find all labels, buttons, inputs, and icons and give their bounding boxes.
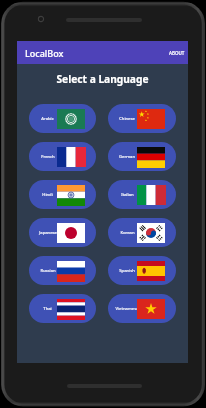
button[interactable]: Spanish [108,256,176,285]
button[interactable]: Japanese [29,218,96,247]
staticText: LocalBox [25,47,64,59]
staticText: Select a Language [17,72,188,86]
staticText: Italian [121,192,134,198]
button[interactable]: Chinese [108,104,176,133]
button[interactable]: Thai [29,294,96,323]
staticText: French [41,154,55,160]
staticText: Arabic [41,116,54,122]
button[interactable]: French [29,142,96,171]
staticText: Russian [40,268,56,274]
staticText: Chinese [119,116,135,122]
staticText: Korean [120,230,135,236]
staticText: Vietnamese [115,306,139,312]
button[interactable]: Korean [108,218,176,247]
button[interactable]: Italian [108,180,176,209]
staticText: Japanese [39,230,57,236]
button[interactable]: Arabic [29,104,96,133]
button[interactable]: Hindi [29,180,96,209]
staticText: Hindi [42,192,53,198]
button[interactable]: ABOUT [166,46,188,60]
button[interactable]: Russian [29,256,96,285]
staticText: ABOUT [169,50,185,56]
button[interactable]: Vietnamese [108,294,176,323]
button[interactable]: German [108,142,176,171]
staticText: German [119,154,135,160]
staticText: Spanish [119,268,135,274]
staticText: Thai [43,306,52,312]
